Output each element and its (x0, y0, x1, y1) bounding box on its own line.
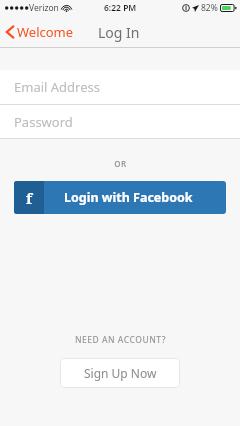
staticText: Email Address (14, 78, 100, 96)
button[interactable]: Email Address (0, 70, 240, 104)
staticText: NEED AN ACCOUNT? (75, 334, 166, 346)
button[interactable]: Sign Up Now (60, 358, 180, 388)
staticText: OR (114, 158, 127, 169)
staticText: 6:22 PM (104, 2, 137, 14)
staticText: Verizon (29, 2, 59, 14)
button[interactable]: f (14, 181, 226, 214)
staticText: Sign Up Now (84, 365, 157, 381)
staticText: 82% (201, 2, 218, 14)
button[interactable]: Password (0, 105, 240, 138)
staticText: Login with Facebook (64, 189, 193, 206)
button[interactable]: Welcome (0, 19, 82, 45)
staticText: Welcome (17, 23, 74, 41)
staticText: f (26, 188, 33, 208)
staticText: Password (14, 113, 73, 131)
staticText: Log In (98, 23, 140, 42)
